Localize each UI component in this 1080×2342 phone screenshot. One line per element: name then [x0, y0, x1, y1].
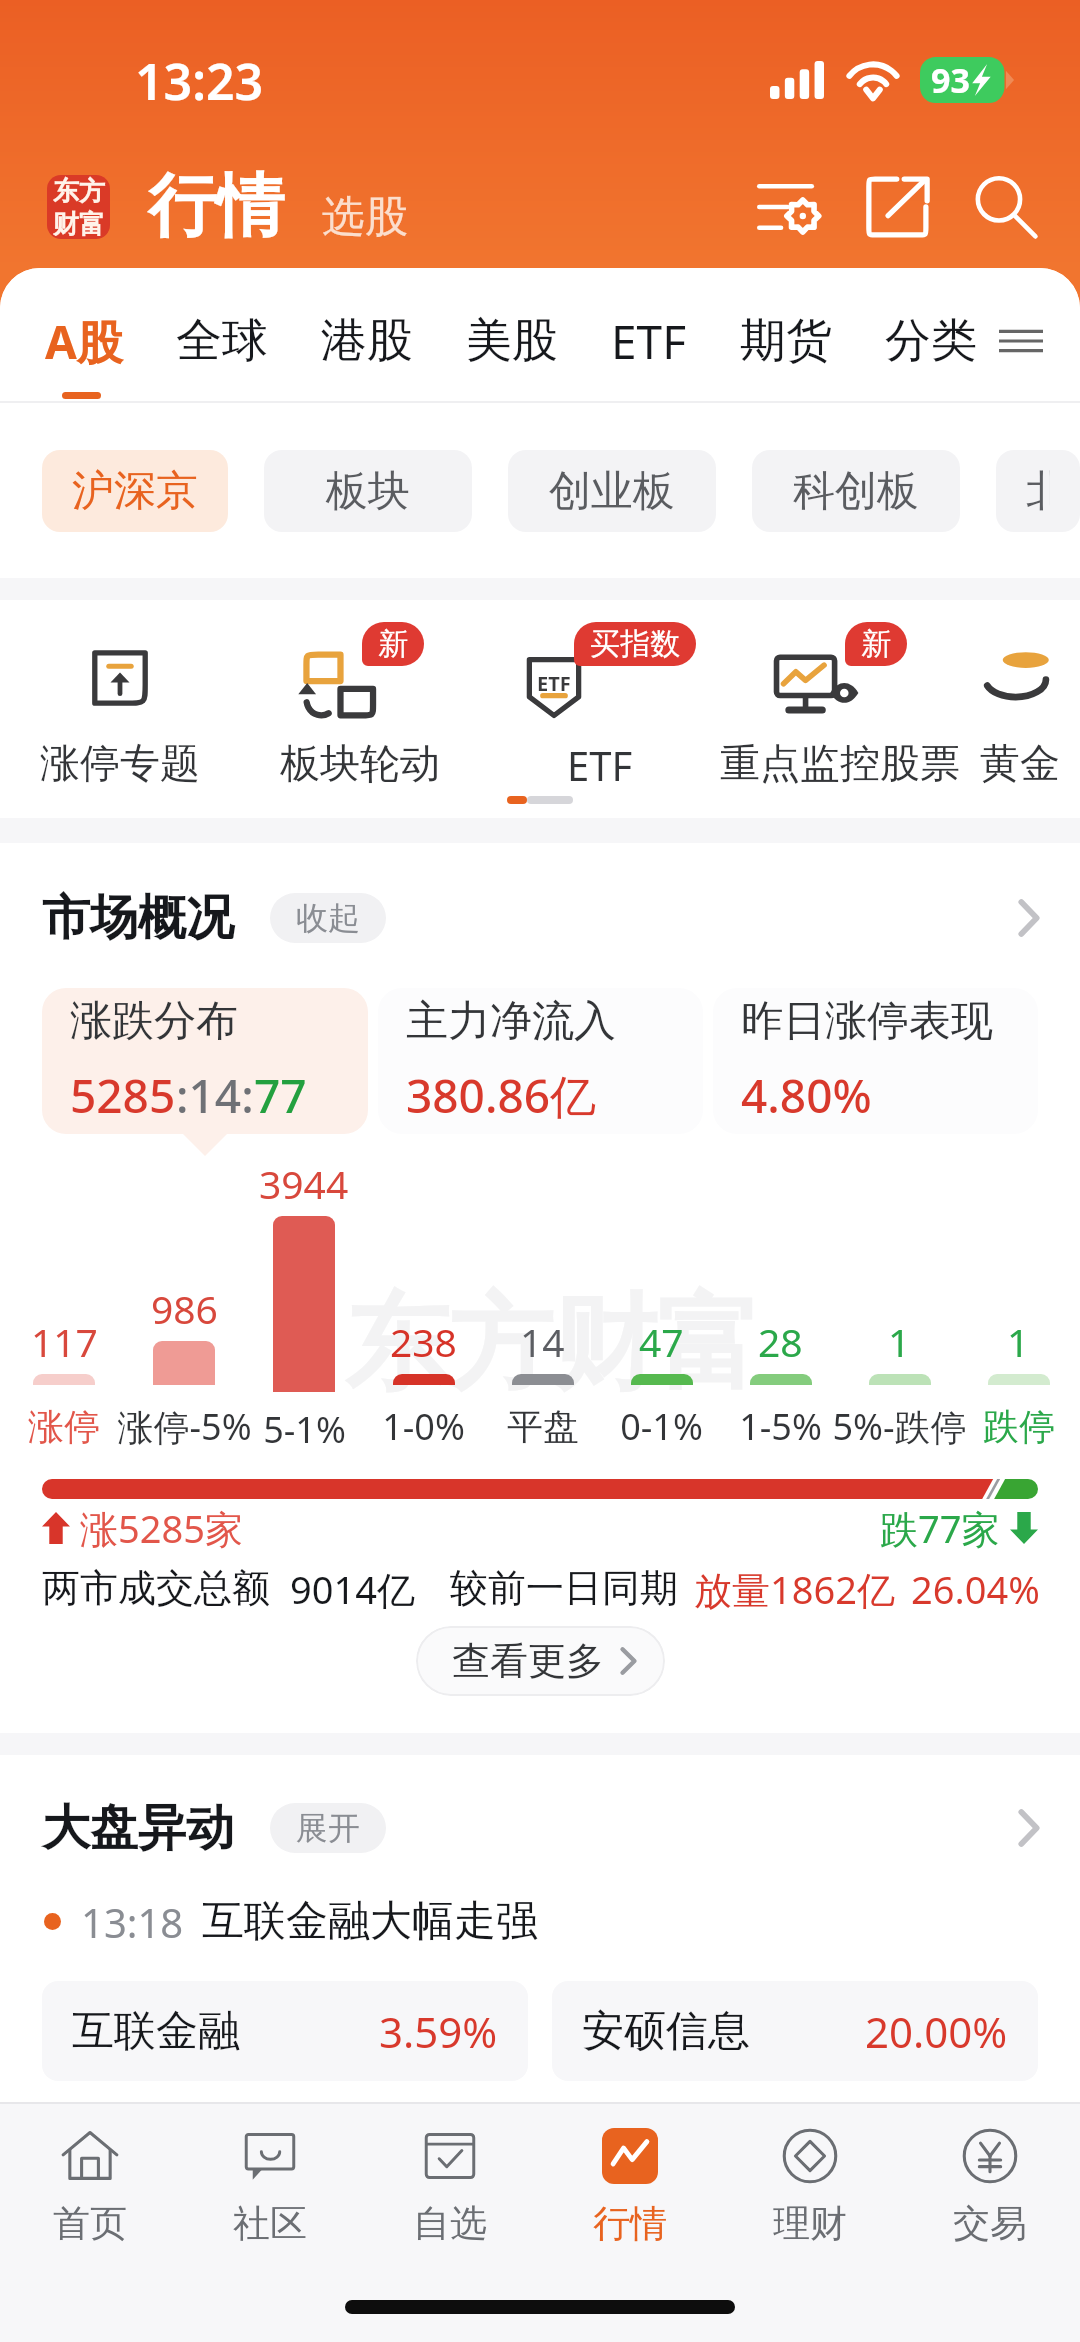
staticText: 行情	[148, 164, 284, 250]
button[interactable]: 理财	[720, 2104, 900, 2266]
button[interactable]: 安硕信息	[552, 1981, 1038, 2081]
staticText: 13:18	[81, 1895, 184, 1947]
button[interactable]: ETF	[480, 618, 720, 798]
staticText: 跌停	[983, 1404, 1055, 1449]
button[interactable]: 黄金	[960, 618, 1080, 798]
staticText: A股	[45, 310, 123, 373]
button[interactable]: 首页	[0, 2104, 180, 2266]
staticText: 涨5285家	[80, 1502, 243, 1554]
button[interactable]: 全球	[176, 301, 268, 381]
staticText: 5285	[70, 1064, 176, 1127]
button[interactable]: 美股	[466, 301, 558, 381]
staticText: 黄金	[980, 738, 1060, 788]
staticText: 互联金融大幅走强	[202, 1895, 538, 1947]
button[interactable]: 板块	[264, 450, 472, 532]
staticText: 东方财富	[345, 1279, 761, 1410]
staticText: 自选	[413, 2200, 487, 2247]
staticText: 77	[254, 1064, 307, 1127]
staticText: 0-1%	[620, 1402, 703, 1451]
staticText: 重点监控股票	[720, 738, 960, 788]
button[interactable]: 大盘异动	[42, 1797, 1040, 1859]
staticText: 科创板	[793, 465, 919, 518]
button[interactable]: 行情	[540, 2104, 720, 2266]
staticText: 新	[378, 625, 408, 663]
button[interactable]: More tabs	[998, 301, 1044, 381]
staticText: 跌77家	[880, 1502, 1000, 1554]
button[interactable]: 自选	[360, 2104, 540, 2266]
button[interactable]: 沪深京	[42, 450, 228, 532]
staticText: 4.80%	[741, 1064, 872, 1127]
staticText: 收起	[296, 898, 360, 938]
button[interactable]: 北交所	[996, 450, 1080, 532]
staticText: 美股	[466, 312, 558, 370]
staticText: 涨停-5%	[117, 1402, 252, 1451]
staticText: 14	[520, 1315, 565, 1368]
staticText: 13:23	[135, 47, 264, 115]
button[interactable]: 涨停专题	[0, 618, 240, 798]
button[interactable]: 科创板	[752, 450, 960, 532]
button[interactable]: 涨跌分布	[42, 988, 368, 1134]
staticText: 1-0%	[382, 1402, 465, 1451]
button[interactable]: 社区	[180, 2104, 360, 2266]
staticText: 47	[639, 1315, 684, 1368]
staticText: 昨日涨停表现	[741, 995, 993, 1048]
staticText: 板块轮动	[280, 738, 440, 788]
staticText: 互联金融	[72, 2005, 240, 2058]
staticText: 市场概况	[42, 888, 234, 948]
staticText: 93	[931, 57, 970, 101]
button[interactable]: 新	[240, 618, 480, 798]
staticText: 买指数	[590, 625, 680, 663]
staticText: 5-1%	[263, 1405, 346, 1454]
staticText: 20.00%	[865, 2003, 1008, 2060]
staticText: 1-5%	[739, 1402, 822, 1451]
staticText: 期货	[740, 312, 832, 370]
staticText: 涨跌分布	[70, 995, 238, 1048]
staticText: 行情	[593, 2200, 667, 2247]
button[interactable]: 主力净流入	[378, 988, 703, 1134]
staticText: 平盘	[507, 1404, 579, 1449]
button[interactable]: 互联金融	[42, 1981, 528, 2081]
staticText: 两市成交总额	[42, 1564, 270, 1612]
button[interactable]: 查看更多	[416, 1626, 665, 1696]
button[interactable]: 昨日涨停表现	[713, 988, 1038, 1134]
button[interactable]: 新	[720, 618, 960, 798]
staticText: 380.86亿	[406, 1064, 597, 1127]
staticText: ETF	[567, 738, 633, 792]
staticText: 较前一日同期	[450, 1564, 678, 1612]
staticText: 涨停	[28, 1404, 100, 1449]
staticText: 1	[888, 1315, 911, 1368]
button[interactable]: 创业板	[508, 450, 716, 532]
staticText: 港股	[321, 312, 413, 370]
staticText: 交易	[953, 2200, 1027, 2247]
staticText: 展开	[296, 1808, 360, 1848]
staticText: 5%-跌停	[832, 1402, 967, 1451]
staticText: 3.59%	[379, 2003, 498, 2060]
staticText: 理财	[773, 2200, 847, 2247]
button[interactable]: Share	[850, 159, 946, 255]
staticText: ETF	[611, 310, 687, 373]
staticText: 新	[861, 625, 891, 663]
staticText: 涨停专题	[40, 738, 200, 788]
button[interactable]: Search	[958, 159, 1054, 255]
staticText: 全球	[176, 312, 268, 370]
staticText: 大盘异动	[42, 1798, 234, 1858]
staticText: :14:	[176, 1064, 254, 1127]
button[interactable]: 港股	[321, 301, 413, 381]
button[interactable]: 期货	[740, 301, 832, 381]
staticText: 986	[151, 1282, 218, 1335]
staticText: 3944	[259, 1157, 349, 1210]
button[interactable]: 市场概况	[42, 887, 1040, 949]
staticText: 选股	[322, 190, 408, 244]
button[interactable]: 分类	[885, 301, 977, 381]
button[interactable]: A股	[45, 301, 123, 381]
button[interactable]: ETF	[611, 301, 687, 381]
staticText: 117	[31, 1315, 98, 1368]
staticText: 主力净流入	[406, 995, 616, 1048]
staticText: ETF	[537, 670, 571, 697]
staticText: 首页	[53, 2200, 127, 2247]
staticText: 东方	[53, 175, 105, 208]
button[interactable]: Filter settings	[742, 159, 838, 255]
staticText: 放量1862亿	[694, 1563, 895, 1613]
button[interactable]: 交易	[900, 2104, 1080, 2266]
staticText: 板块	[326, 465, 410, 518]
